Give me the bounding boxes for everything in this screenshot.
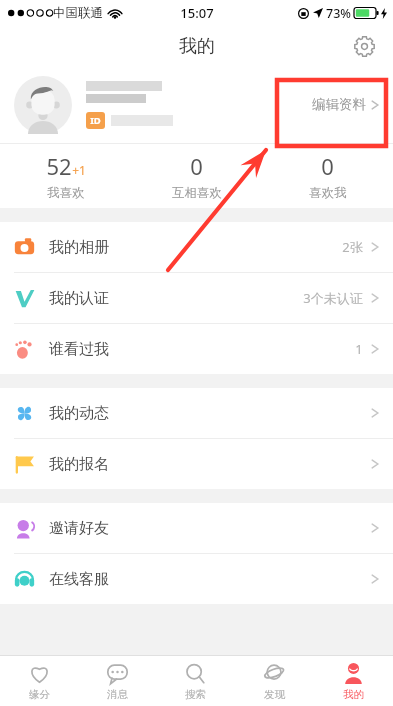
staticText: 发现	[264, 688, 285, 701]
button[interactable]: 我的动态	[0, 388, 393, 438]
button[interactable]: 在线客服	[0, 554, 393, 604]
staticText: 2张	[342, 238, 363, 256]
button[interactable]: 缘分	[0, 656, 78, 706]
button[interactable]: Settings	[347, 29, 381, 63]
staticText: 邀请好友	[49, 519, 109, 538]
staticText: 谁看过我	[49, 340, 109, 359]
staticText: 中国联通	[53, 5, 103, 21]
button[interactable]: 52	[0, 144, 131, 208]
staticText: 3个未认证	[303, 289, 363, 307]
staticText: 73%	[326, 5, 351, 22]
button[interactable]: 邀请好友	[0, 503, 393, 553]
staticText: 互相喜欢	[172, 185, 222, 201]
staticText: 我的认证	[49, 289, 109, 308]
staticText: 消息	[107, 688, 128, 701]
button[interactable]: 0	[262, 144, 393, 208]
button[interactable]: 编辑资料	[312, 66, 393, 143]
button[interactable]: 我的认证	[0, 273, 393, 323]
staticText: +1	[72, 162, 86, 178]
staticText: 我的报名	[49, 455, 109, 474]
staticText: 搜索	[185, 688, 206, 701]
button[interactable]: 消息	[78, 656, 156, 706]
button[interactable]: 谁看过我	[0, 324, 393, 374]
staticText: 我的动态	[49, 404, 109, 423]
staticText: 0	[190, 151, 203, 181]
button[interactable]: 我的报名	[0, 439, 393, 489]
button[interactable]: ID	[0, 66, 393, 143]
staticText: 1	[355, 340, 363, 358]
button[interactable]: 我的	[314, 656, 393, 706]
button[interactable]: 0	[131, 144, 262, 208]
staticText: 编辑资料	[312, 96, 366, 113]
staticText: 喜欢我	[309, 185, 347, 201]
staticText: 在线客服	[49, 570, 109, 589]
button[interactable]: 我的相册	[0, 222, 393, 272]
button[interactable]: 搜索	[156, 656, 235, 706]
staticText: 15:07	[180, 4, 214, 22]
staticText: 52	[46, 151, 72, 181]
staticText: 缘分	[29, 688, 50, 701]
staticText: 我的	[343, 688, 364, 701]
button[interactable]: 发现	[235, 656, 314, 706]
staticText: ID	[90, 114, 101, 127]
staticText: 我喜欢	[47, 185, 85, 201]
staticText: 我的	[179, 35, 215, 58]
staticText: 0	[321, 151, 334, 181]
staticText: 我的相册	[49, 238, 109, 257]
